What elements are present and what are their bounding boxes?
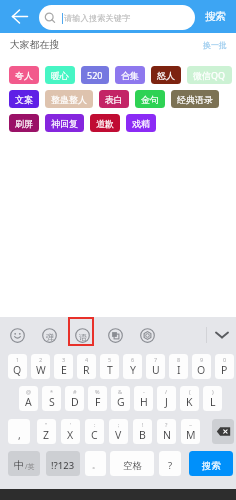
button[interactable]: " <box>37 419 56 444</box>
button[interactable]: ~ <box>181 419 200 444</box>
button[interactable]: ) <box>203 386 222 411</box>
staticText: 经典语录 <box>177 94 213 105</box>
staticText: 文案 <box>15 94 33 105</box>
staticText: 9 <box>200 356 204 363</box>
button[interactable]: Stickers <box>38 324 60 346</box>
staticText: 神回复 <box>51 118 78 129</box>
button[interactable]: : <box>85 419 104 444</box>
staticText: 6 <box>131 356 135 363</box>
button[interactable]: , <box>8 419 30 444</box>
staticText: 换一批 <box>203 40 227 50</box>
button[interactable]: 表白 <box>99 90 129 108</box>
button[interactable]: ' <box>61 419 80 444</box>
button[interactable]: Emoji <box>6 324 28 346</box>
button[interactable]: 神回复 <box>45 114 84 132</box>
staticText: N <box>163 428 171 442</box>
staticText: " <box>45 421 48 428</box>
staticText: , <box>18 428 21 442</box>
staticText: F <box>95 395 101 409</box>
button[interactable]: 3 <box>54 354 73 379</box>
button[interactable]: 搜索 <box>195 0 236 33</box>
button[interactable]: 刷屏 <box>9 114 39 132</box>
staticText: 8 <box>177 356 181 363</box>
staticText: J <box>165 395 168 409</box>
button[interactable]: Keyboard settings <box>136 324 158 346</box>
staticText: 整蛊整人 <box>51 94 87 105</box>
staticText: 空格 <box>123 460 142 472</box>
staticText: ~ <box>189 421 193 428</box>
button[interactable]: !?123 <box>46 451 80 476</box>
button[interactable]: 请输入搜索关键字 <box>39 5 195 30</box>
button[interactable]: 文案 <box>9 90 39 108</box>
staticText: G <box>117 395 125 409</box>
button[interactable]: 0 <box>215 354 234 379</box>
staticText: : <box>94 421 96 428</box>
button[interactable]: 微信QQ <box>187 66 232 84</box>
button[interactable]: 2 <box>31 354 50 379</box>
button[interactable]: ; <box>109 419 128 444</box>
button[interactable]: 怒人 <box>151 66 181 84</box>
button[interactable]: 7 <box>146 354 165 379</box>
button[interactable]: 1 <box>8 354 27 379</box>
button[interactable]: 5 <box>100 354 119 379</box>
staticText: W <box>36 363 46 377</box>
button[interactable]: 戏精 <box>126 114 156 132</box>
button[interactable]: Voice input <box>71 324 93 346</box>
button[interactable]: 9 <box>192 354 211 379</box>
button[interactable]: Backspace <box>212 419 234 444</box>
button[interactable]: Clipboard <box>104 324 126 346</box>
staticText: ; <box>118 421 120 428</box>
button[interactable]: 中 <box>8 451 40 476</box>
button[interactable]: 6 <box>123 354 142 379</box>
button[interactable]: 换一批 <box>203 40 227 50</box>
button[interactable]: 搜索 <box>189 451 233 476</box>
staticText: 语 <box>79 332 87 342</box>
staticText: 微信QQ <box>193 69 226 81</box>
staticText: 0 <box>223 356 227 363</box>
staticText: 5 <box>108 356 112 363</box>
button[interactable]: ( <box>180 386 199 411</box>
button[interactable]: 暖心 <box>45 66 75 84</box>
button[interactable]: * <box>42 386 61 411</box>
staticText: 刷屏 <box>15 118 33 129</box>
button[interactable]: 金句 <box>135 90 165 108</box>
button[interactable]: Back <box>0 0 38 33</box>
button[interactable]: 。 <box>85 451 106 476</box>
button[interactable]: 整蛊整人 <box>45 90 93 108</box>
staticText: U <box>152 363 160 377</box>
staticText: V <box>115 428 122 442</box>
button[interactable]: - <box>134 386 153 411</box>
button[interactable]: ? <box>157 419 176 444</box>
staticText: % <box>95 388 100 395</box>
button[interactable]: % <box>88 386 107 411</box>
staticText: / <box>165 388 168 395</box>
staticText: R <box>83 363 90 377</box>
button[interactable]: / <box>157 386 176 411</box>
staticText: !?123 <box>51 459 75 472</box>
button[interactable]: 空格 <box>110 451 154 476</box>
staticText: - <box>143 388 145 395</box>
button[interactable]: & <box>111 386 130 411</box>
staticText: # <box>73 388 77 395</box>
button[interactable]: ! <box>133 419 152 444</box>
staticText: Y <box>130 363 136 377</box>
staticText: A <box>25 395 32 409</box>
button[interactable]: 8 <box>169 354 188 379</box>
button[interactable]: 520 <box>81 66 109 84</box>
button[interactable]: ? <box>159 451 181 476</box>
staticText: 表白 <box>105 94 123 105</box>
staticText: 。 <box>92 460 100 470</box>
staticText: ? <box>168 459 173 472</box>
button[interactable]: 道歉 <box>90 114 120 132</box>
button[interactable]: 4 <box>77 354 96 379</box>
button[interactable]: 经典语录 <box>171 90 219 108</box>
staticText: 大家都在搜 <box>10 39 59 51</box>
button[interactable]: 夸人 <box>9 66 39 84</box>
staticText: ' <box>70 421 72 428</box>
staticText: X <box>67 428 74 442</box>
button[interactable]: 合集 <box>115 66 145 84</box>
button[interactable]: Hide keyboard <box>207 317 236 353</box>
button[interactable]: @ <box>19 386 38 411</box>
button[interactable]: # <box>65 386 84 411</box>
staticText: 夸人 <box>15 70 33 81</box>
